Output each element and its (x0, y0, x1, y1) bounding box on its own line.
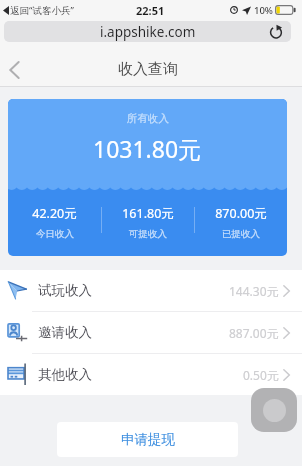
button[interactable]: 申请提现 (57, 422, 238, 457)
staticText: 10% (254, 4, 273, 17)
button[interactable]: i.appshike.com (4, 21, 291, 42)
button[interactable]: 其他收入 (0, 354, 302, 395)
staticText: 887.00元 (229, 325, 279, 341)
staticText: 可提收入 (129, 228, 167, 240)
staticText: i.appshike.com (100, 23, 196, 41)
button[interactable]: 试玩收入 (0, 270, 302, 311)
staticText: 返回“试客小兵” (10, 4, 74, 17)
button[interactable]: Assistive touch (251, 388, 297, 432)
button[interactable]: Reload (266, 22, 286, 42)
staticText: 22:51 (136, 3, 165, 18)
staticText: 1031.80元 (93, 133, 202, 164)
staticText: 0.50元 (243, 367, 279, 383)
staticText: 申请提现 (121, 431, 175, 448)
staticText: 161.80元 (122, 205, 174, 222)
button[interactable]: Back (0, 52, 40, 87)
staticText: 邀请收入 (38, 324, 92, 341)
button[interactable]: 邀请收入 (0, 312, 302, 353)
staticText: 144.30元 (229, 283, 279, 299)
staticText: 42.20元 (32, 205, 77, 222)
staticText: 所有收入 (127, 112, 169, 125)
staticText: 收入查询 (118, 60, 178, 79)
staticText: 已提收入 (222, 228, 260, 240)
staticText: 试玩收入 (38, 282, 92, 299)
staticText: 今日收入 (36, 228, 74, 240)
staticText: 870.00元 (215, 205, 267, 222)
staticText: 其他收入 (38, 366, 92, 383)
